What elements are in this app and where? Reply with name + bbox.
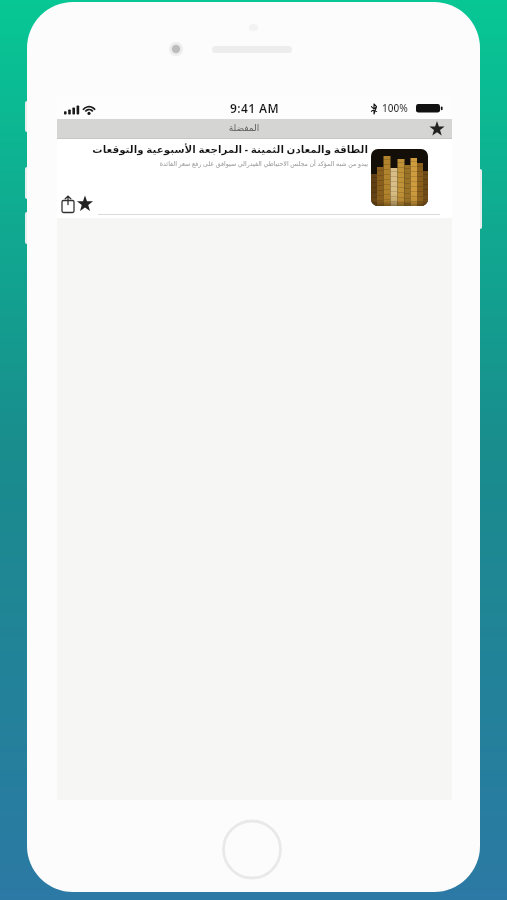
staticText: 100% [382,101,408,115]
staticText: يبدو من شبه المؤكد أن مجلس الاحتياطي الف… [77,159,368,171]
button[interactable] [60,195,76,215]
button[interactable]: الطاقة والمعادن الثمينة - المراجعة الأسب… [57,139,452,218]
button[interactable] [425,119,449,139]
staticText: المفضلة [184,123,304,137]
staticText: الطاقة والمعادن الثمينة - المراجعة الأسب… [68,142,368,159]
staticText: 9:41 AM [230,100,280,116]
button[interactable] [76,194,94,214]
